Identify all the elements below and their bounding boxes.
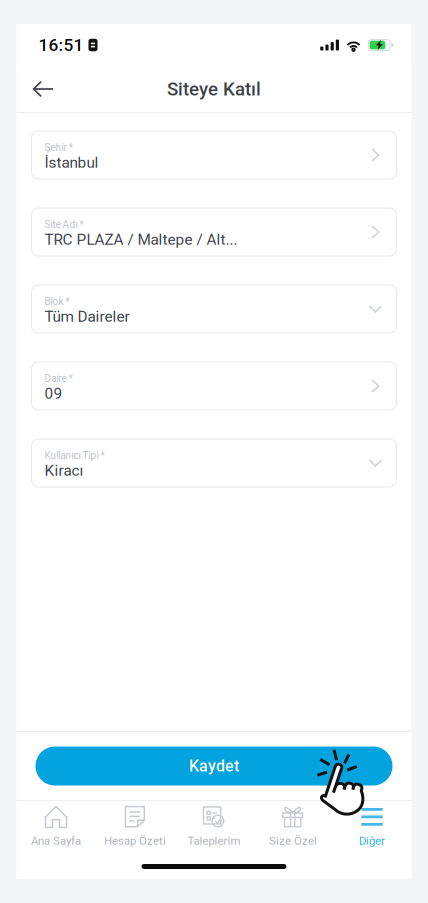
- staticText: Size Özel: [269, 834, 317, 848]
- button[interactable]: Site Adı *: [31, 208, 396, 256]
- staticText: Diğer: [359, 834, 385, 848]
- staticText: Ana Sayfa: [31, 834, 81, 848]
- staticText: 16:51: [38, 35, 83, 55]
- button[interactable]: Kaydet: [35, 746, 392, 785]
- button[interactable]: Back: [16, 69, 65, 109]
- staticText: 09: [44, 384, 62, 402]
- staticText: Site Adı *: [44, 219, 83, 230]
- staticText: Blok *: [44, 296, 69, 307]
- staticText: Kaydet: [189, 757, 239, 775]
- staticText: Kullanıcı Tipi *: [44, 450, 104, 461]
- staticText: TRC PLAZA / Maltepe / Alt...: [44, 230, 237, 248]
- staticText: Hesap Özeti: [104, 834, 166, 848]
- button[interactable]: Blok *: [31, 285, 396, 333]
- staticText: Daire *: [44, 373, 72, 384]
- button[interactable]: Kullanıcı Tipi *: [31, 439, 396, 487]
- staticText: Şehir *: [44, 142, 72, 153]
- button[interactable]: Daire *: [31, 362, 396, 410]
- button[interactable]: Şehir *: [31, 131, 396, 179]
- button[interactable]: Size Özel: [253, 799, 332, 856]
- button[interactable]: Diğer: [332, 799, 411, 856]
- staticText: İstanbul: [44, 153, 98, 171]
- staticText: Taleplerim: [187, 834, 240, 848]
- staticText: Kiracı: [44, 461, 83, 479]
- staticText: Siteye Katıl: [167, 78, 261, 100]
- staticText: Tüm Daireler: [44, 307, 129, 325]
- button[interactable]: Taleplerim: [174, 799, 253, 856]
- button[interactable]: Hesap Özeti: [95, 799, 174, 856]
- button[interactable]: Ana Sayfa: [16, 799, 95, 856]
